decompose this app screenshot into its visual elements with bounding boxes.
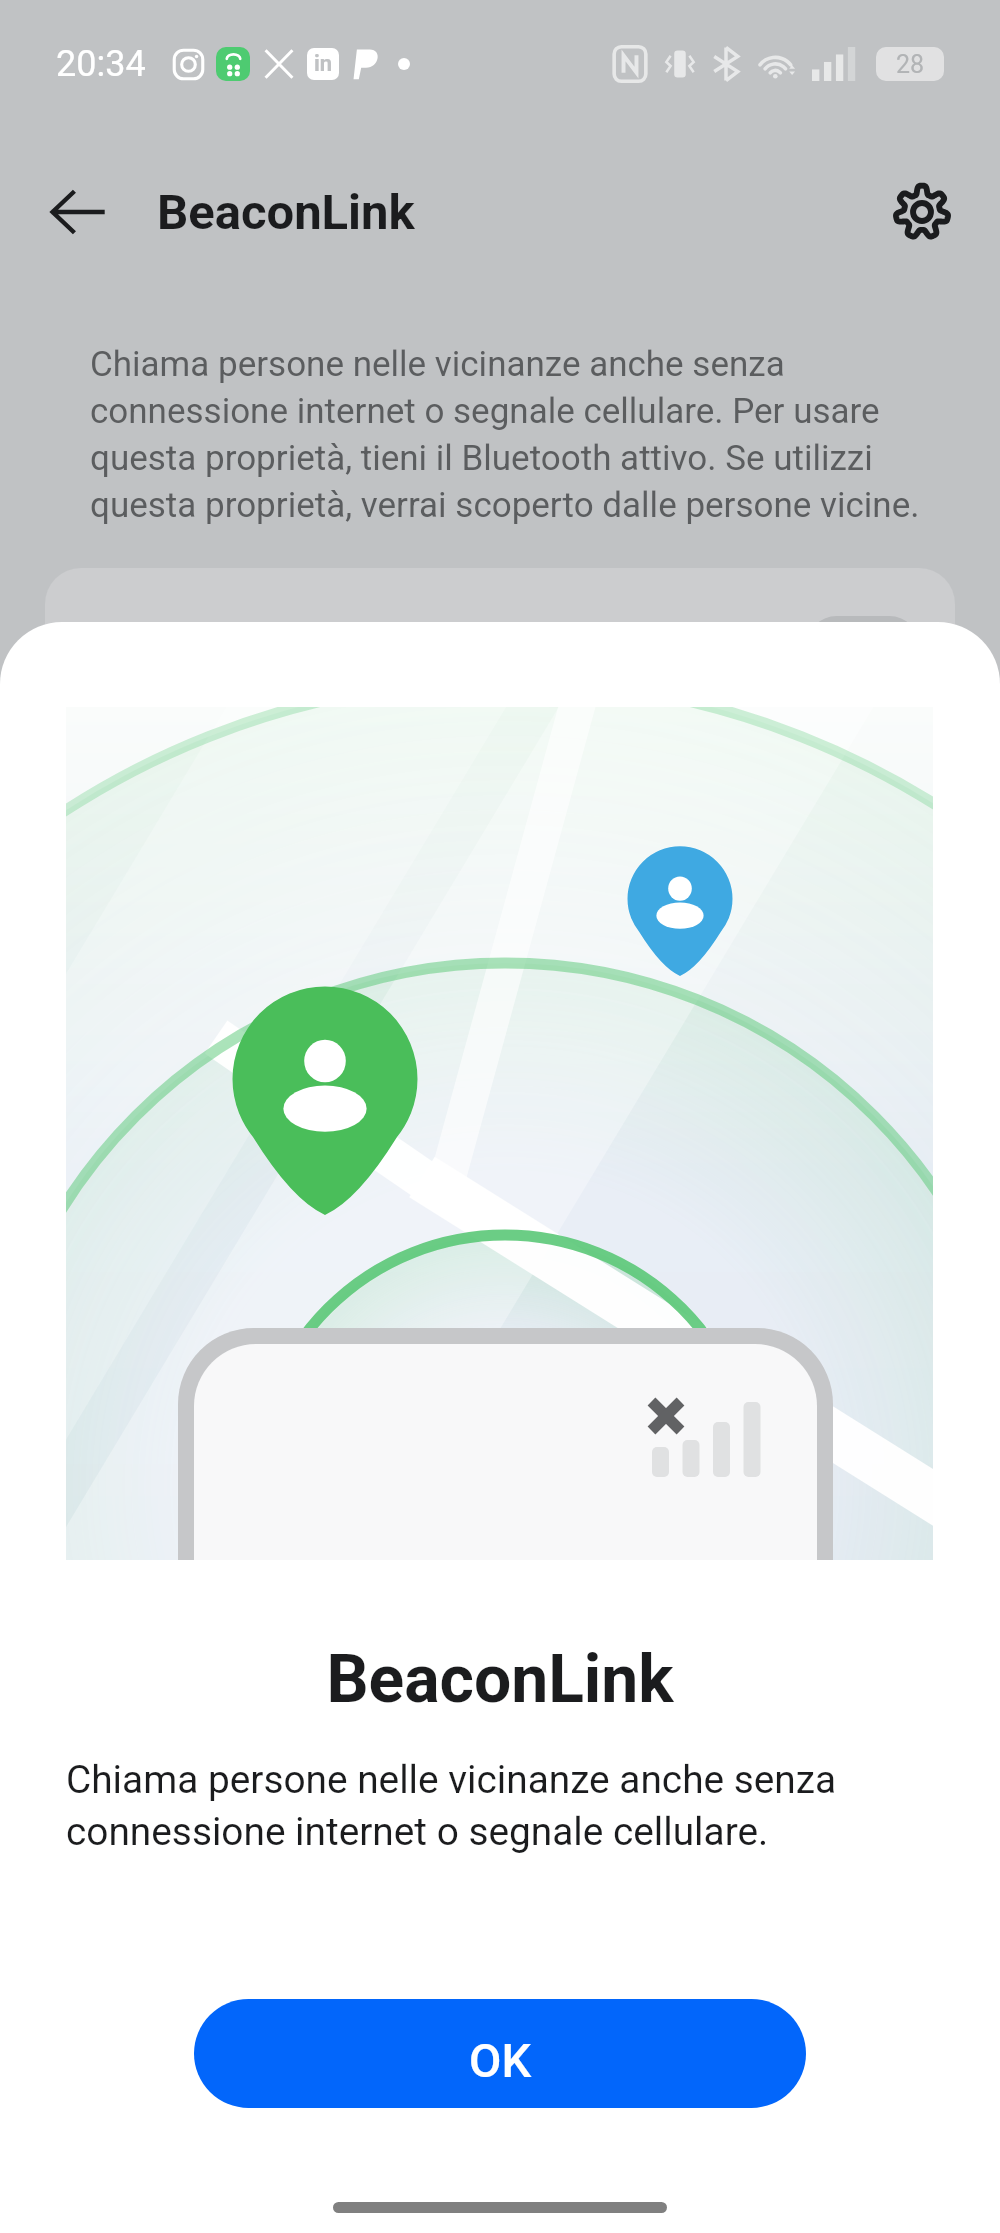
staticText: Chiama persone nelle vicinanze anche sen… <box>66 1757 980 1854</box>
button[interactable]: Back <box>32 167 122 257</box>
button[interactable]: OK <box>194 1999 806 2108</box>
staticText: Chiama persone nelle vicinanze anche sen… <box>90 344 990 525</box>
staticText: 28 <box>896 50 925 79</box>
staticText: OK <box>469 2033 532 2088</box>
button[interactable]: Settings <box>878 168 966 256</box>
staticText: 20:34 <box>56 43 146 85</box>
staticText: BeaconLink <box>0 1641 1000 1718</box>
staticText: in <box>314 51 333 77</box>
staticText: BeaconLink <box>157 184 415 241</box>
